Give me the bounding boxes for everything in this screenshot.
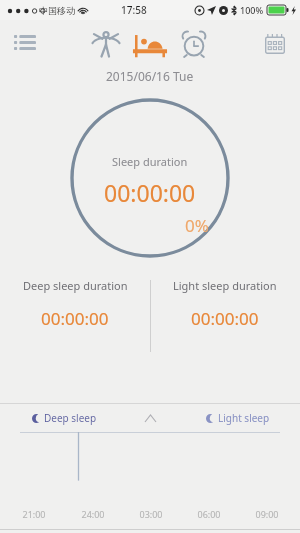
staticText: 0% [185, 214, 209, 237]
staticText: 24:00 [81, 508, 105, 520]
staticText: Sleep duration [112, 154, 188, 169]
staticText: 2015/06/16 Tue [106, 68, 194, 84]
button[interactable]: Menu [8, 27, 42, 61]
staticText: 03:00 [139, 508, 163, 520]
button[interactable]: Collapse [141, 409, 159, 427]
button[interactable]: Exercise [87, 25, 125, 63]
staticText: 00:00:00 [191, 307, 259, 330]
staticText: 21:00 [22, 508, 46, 520]
staticText: Deep sleep [44, 411, 97, 425]
button[interactable]: Light sleep [206, 411, 270, 425]
staticText: 中国移动 [39, 5, 75, 16]
button[interactable]: Light sleep duration [150, 278, 300, 330]
staticText: Light sleep duration [173, 278, 277, 293]
button[interactable]: Deep sleep [32, 411, 97, 425]
staticText: 100% [240, 4, 264, 16]
staticText: 00:00:00 [104, 177, 196, 208]
staticText: 00:00:00 [41, 307, 109, 330]
button[interactable]: Calendar [258, 27, 292, 61]
button[interactable]: Alarm [175, 25, 213, 63]
button[interactable]: Sleep [131, 25, 169, 63]
staticText: 17:58 [121, 3, 147, 17]
staticText: 06:00 [197, 508, 221, 520]
staticText: Deep sleep duration [23, 278, 128, 293]
button[interactable]: Deep sleep duration [0, 278, 150, 330]
staticText: 09:00 [255, 508, 279, 520]
staticText: Light sleep [218, 411, 270, 425]
